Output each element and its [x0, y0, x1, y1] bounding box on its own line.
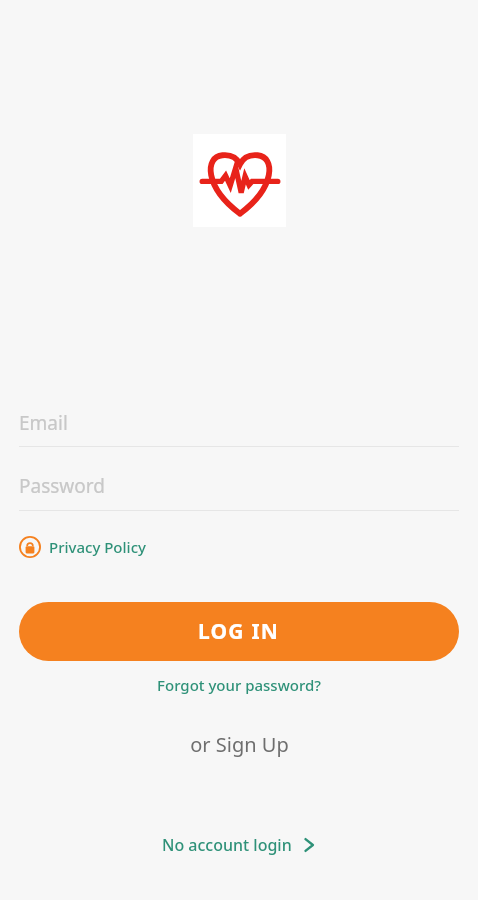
button[interactable]: Forgot your password?	[151, 672, 327, 698]
button[interactable]: or Sign Up	[184, 728, 295, 761]
other: Continue without account	[302, 838, 316, 852]
staticText: or Sign Up	[190, 731, 289, 758]
staticText: Privacy Policy	[49, 537, 146, 557]
staticText: Email	[19, 410, 68, 436]
button[interactable]: No account login	[154, 830, 324, 860]
button[interactable]: LOG IN	[19, 602, 459, 661]
staticText: LOG IN	[198, 617, 280, 646]
staticText: Password	[19, 473, 105, 499]
button[interactable]: Privacy Policy	[17, 532, 148, 562]
staticText: No account login	[162, 834, 292, 856]
staticText: Forgot your password?	[157, 675, 321, 695]
